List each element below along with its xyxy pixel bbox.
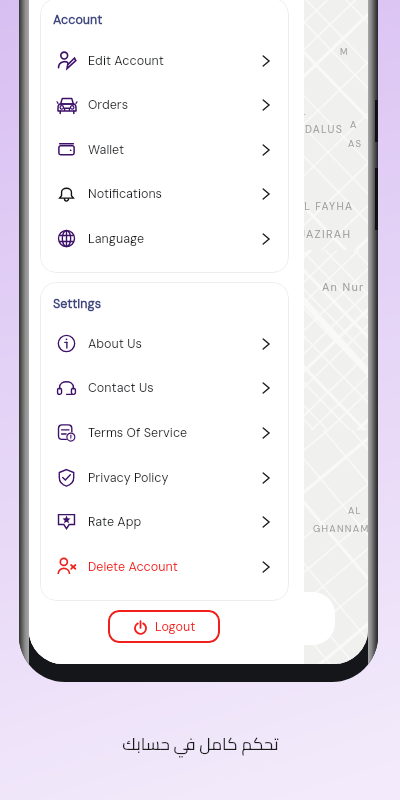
button[interactable]: Delete Account xyxy=(40,544,289,589)
staticText: Edit Account xyxy=(88,53,164,69)
staticText: Privacy Policy xyxy=(88,470,169,486)
staticText: Language xyxy=(88,231,145,247)
button[interactable]: Logout xyxy=(108,610,220,643)
staticText: About Us xyxy=(88,336,142,352)
button[interactable]: Contact Us xyxy=(40,365,289,410)
button[interactable]: Rate App xyxy=(40,499,289,544)
staticText: تحكم كامل في حسابك xyxy=(122,728,279,760)
staticText: Delete Account xyxy=(88,559,178,575)
staticText: Orders xyxy=(88,97,129,113)
staticText: GHANNAM xyxy=(313,523,368,535)
button[interactable]: About Us xyxy=(40,321,289,366)
staticText: L JAZIRAH xyxy=(288,227,352,241)
button[interactable]: Notifications xyxy=(40,171,289,216)
staticText: Account xyxy=(53,12,103,28)
button[interactable]: Terms Of Service xyxy=(40,410,289,455)
staticText: Notifications xyxy=(88,186,162,202)
staticText: Wallet xyxy=(88,142,124,158)
button[interactable]: Edit Account xyxy=(40,38,289,83)
staticText: AS xyxy=(348,138,363,150)
staticText: AL FAYHA xyxy=(296,200,354,214)
staticText: Settings xyxy=(53,296,102,312)
staticText: Terms Of Service xyxy=(88,425,188,441)
staticText: AL xyxy=(293,106,307,118)
staticText: Logout xyxy=(155,619,196,635)
staticText: M xyxy=(340,46,349,58)
staticText: Rate App xyxy=(88,514,142,530)
staticText: ANDALUS xyxy=(288,123,344,137)
button[interactable]: Language xyxy=(40,216,289,261)
staticText: AL xyxy=(348,505,362,517)
staticText: Contact Us xyxy=(88,380,154,396)
staticText: A xyxy=(350,119,358,131)
button[interactable]: Privacy Policy xyxy=(40,455,289,500)
button[interactable]: Wallet xyxy=(40,127,289,172)
staticText: An Nur xyxy=(322,280,365,294)
button[interactable]: Orders xyxy=(40,82,289,127)
